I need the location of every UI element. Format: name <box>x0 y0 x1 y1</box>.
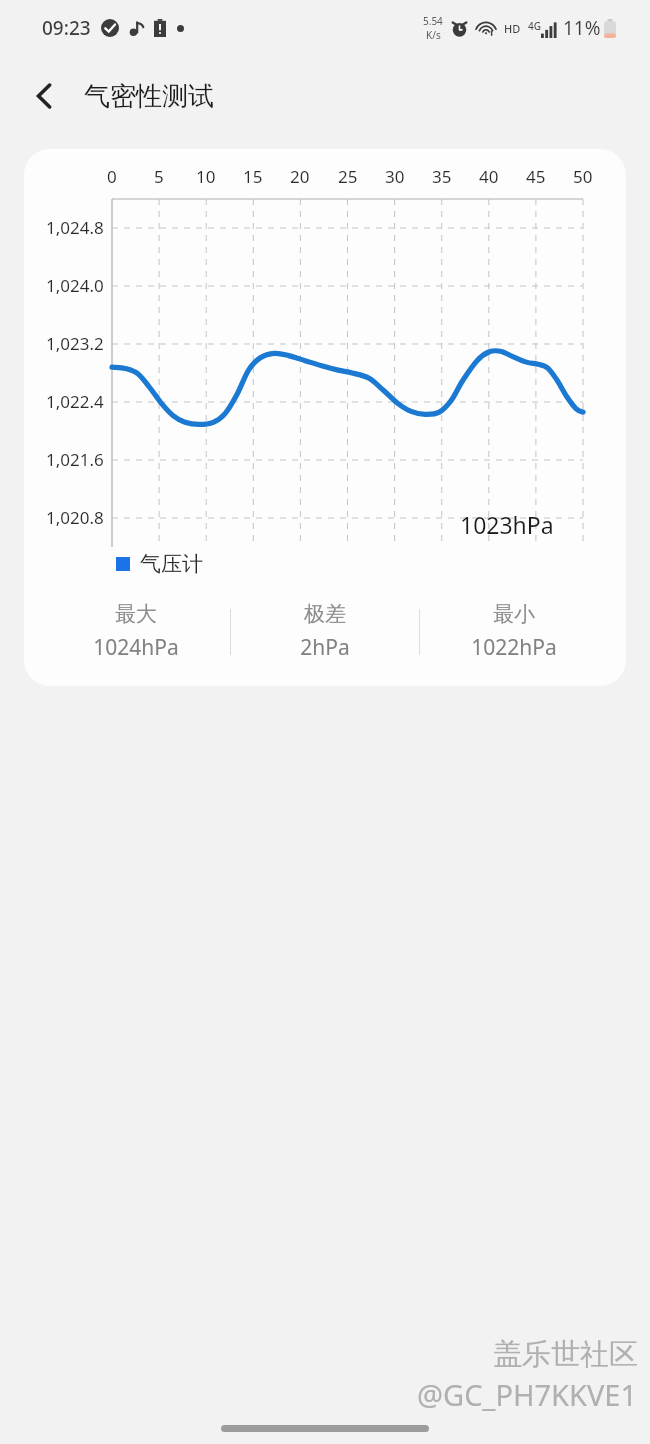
button[interactable]: Back <box>16 67 74 125</box>
staticText: 气密性测试 <box>84 80 214 113</box>
staticText: HD <box>504 21 521 36</box>
staticText: 35 <box>432 165 452 188</box>
staticText: 1,022.4 <box>46 390 104 413</box>
staticText: 1,020.8 <box>46 506 104 529</box>
staticText: 最大 <box>115 601 157 627</box>
staticText: 10 <box>196 165 216 188</box>
button[interactable]: 最小 <box>420 601 608 662</box>
staticText: 1023hPa <box>460 509 554 540</box>
staticText: 15 <box>243 165 263 188</box>
staticText: 极差 <box>304 601 346 627</box>
staticText: 11% <box>563 15 601 41</box>
staticText: 09:23 <box>42 15 91 41</box>
staticText: 1024hPa <box>93 633 179 662</box>
staticText: 20 <box>290 165 310 188</box>
button[interactable]: 极差 <box>231 601 419 662</box>
staticText: 0 <box>107 165 117 188</box>
staticText: 5.54 <box>423 14 443 28</box>
staticText: 4G <box>528 19 541 33</box>
staticText: 2hPa <box>300 633 350 662</box>
staticText: 25 <box>338 165 358 188</box>
staticText: 1,024.0 <box>46 274 104 297</box>
staticText: 气压计 <box>140 551 203 577</box>
staticText: 1,024.8 <box>46 216 104 239</box>
staticText: 5 <box>154 165 164 188</box>
staticText: @GC_PH7KKVE1 <box>417 1375 638 1414</box>
staticText: 45 <box>526 165 546 188</box>
button[interactable]: 0 <box>24 149 626 686</box>
staticText: K/s <box>426 28 441 42</box>
staticText: 50 <box>573 165 593 188</box>
staticText: 40 <box>479 165 499 188</box>
staticText: 最小 <box>493 601 535 627</box>
staticText: 1,021.6 <box>46 448 104 471</box>
staticText: 1,023.2 <box>46 332 104 355</box>
staticText: 30 <box>385 165 405 188</box>
staticText: 盖乐世社区 <box>493 1336 638 1373</box>
staticText: 1022hPa <box>471 633 557 662</box>
button[interactable]: 最大 <box>42 601 230 662</box>
